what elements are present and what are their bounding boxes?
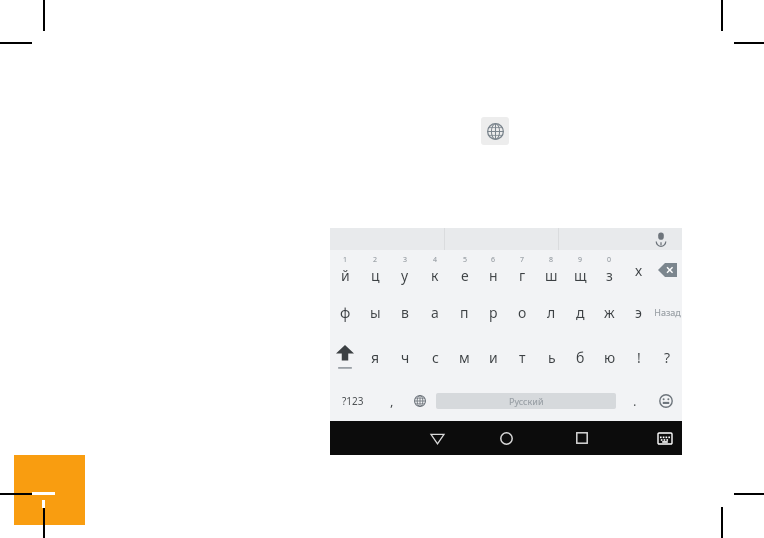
staticText: ц <box>371 266 380 285</box>
button[interactable]: в <box>390 290 420 334</box>
staticText: п <box>460 303 469 322</box>
button[interactable]: Русский <box>436 393 616 409</box>
staticText: г <box>519 266 526 285</box>
button[interactable]: м <box>450 334 479 381</box>
button[interactable]: р <box>479 290 508 334</box>
staticText: 8 <box>549 255 554 265</box>
staticText: 5 <box>463 255 468 265</box>
button[interactable]: д <box>566 290 595 334</box>
staticText: э <box>635 303 642 322</box>
button[interactable]: Recent apps <box>561 421 603 455</box>
staticText: ы <box>370 303 381 322</box>
staticText: у <box>401 266 409 285</box>
staticText: ч <box>401 348 410 367</box>
staticText: я <box>371 348 380 367</box>
button[interactable]: 5 <box>450 250 479 290</box>
button[interactable]: 3 <box>390 250 420 290</box>
staticText: , <box>390 392 394 410</box>
button[interactable]: 9 <box>566 250 595 290</box>
button[interactable]: Switch keyboard <box>650 421 680 455</box>
staticText: о <box>518 303 527 322</box>
staticText: щ <box>574 266 587 285</box>
button[interactable]: . <box>620 381 650 421</box>
staticText: а <box>431 303 439 322</box>
button[interactable]: п <box>450 290 479 334</box>
button[interactable]: с <box>420 334 450 381</box>
staticText: к <box>431 266 439 285</box>
staticText: ? <box>664 348 671 367</box>
staticText: 9 <box>578 255 583 265</box>
button[interactable]: ?123 <box>330 381 376 421</box>
button[interactable]: л <box>537 290 566 334</box>
staticText: в <box>401 303 409 322</box>
button[interactable]: Change keyboard language <box>481 117 509 145</box>
staticText: ж <box>604 303 615 322</box>
button[interactable]: ! <box>624 334 653 381</box>
staticText: м <box>459 348 470 367</box>
button[interactable]: Home <box>485 421 527 455</box>
button[interactable]: ч <box>390 334 420 381</box>
button[interactable]: ю <box>595 334 624 381</box>
staticText: з <box>606 266 613 285</box>
staticText: Русский <box>509 395 544 407</box>
staticText: х <box>635 261 643 280</box>
staticText: ф <box>340 303 351 322</box>
button[interactable]: э <box>624 290 653 334</box>
button[interactable]: Backspace <box>653 250 682 290</box>
staticText: е <box>461 266 469 285</box>
button[interactable]: Emoji <box>650 381 682 421</box>
button[interactable]: х <box>624 250 653 290</box>
button[interactable]: Назад <box>653 290 682 334</box>
button[interactable]: ? <box>653 334 682 381</box>
button[interactable]: 6 <box>479 250 508 290</box>
staticText: Назад <box>654 306 681 318</box>
button[interactable]: а <box>420 290 450 334</box>
staticText: . <box>633 392 637 410</box>
staticText: 7 <box>520 255 525 265</box>
button[interactable]: т <box>508 334 537 381</box>
button[interactable]: ы <box>360 290 390 334</box>
staticText: н <box>489 266 498 285</box>
staticText: й <box>341 266 350 285</box>
button[interactable]: 2 <box>360 250 390 290</box>
staticText: 0 <box>607 255 612 265</box>
button[interactable]: я <box>360 334 390 381</box>
staticText: д <box>576 303 585 322</box>
button[interactable]: , <box>376 381 408 421</box>
staticText: ь <box>548 348 556 367</box>
staticText: ю <box>604 348 616 367</box>
staticText: ш <box>545 266 558 285</box>
button[interactable]: ф <box>330 290 360 334</box>
staticText: 2 <box>373 255 378 265</box>
staticText: и <box>489 348 498 367</box>
staticText: 1 <box>343 255 348 265</box>
button[interactable]: о <box>508 290 537 334</box>
staticText: б <box>576 348 585 367</box>
staticText: с <box>432 348 439 367</box>
staticText: т <box>519 348 526 367</box>
button[interactable]: 8 <box>537 250 566 290</box>
button[interactable]: Back <box>416 421 458 455</box>
button[interactable]: 1 <box>330 250 360 290</box>
button[interactable]: 0 <box>595 250 624 290</box>
button[interactable]: 7 <box>508 250 537 290</box>
staticText: л <box>547 303 556 322</box>
button[interactable]: Change language <box>408 381 432 421</box>
staticText: р <box>489 303 498 322</box>
button[interactable]: 4 <box>420 250 450 290</box>
staticText: 6 <box>491 255 496 265</box>
button[interactable]: и <box>479 334 508 381</box>
button[interactable]: б <box>566 334 595 381</box>
button[interactable]: Voice input <box>652 230 670 248</box>
staticText: 4 <box>433 255 438 265</box>
staticText: 3 <box>403 255 408 265</box>
button[interactable]: Shift <box>330 334 360 381</box>
staticText: ! <box>637 348 641 367</box>
button[interactable]: ь <box>537 334 566 381</box>
staticText: ?123 <box>342 394 364 408</box>
button[interactable]: ж <box>595 290 624 334</box>
